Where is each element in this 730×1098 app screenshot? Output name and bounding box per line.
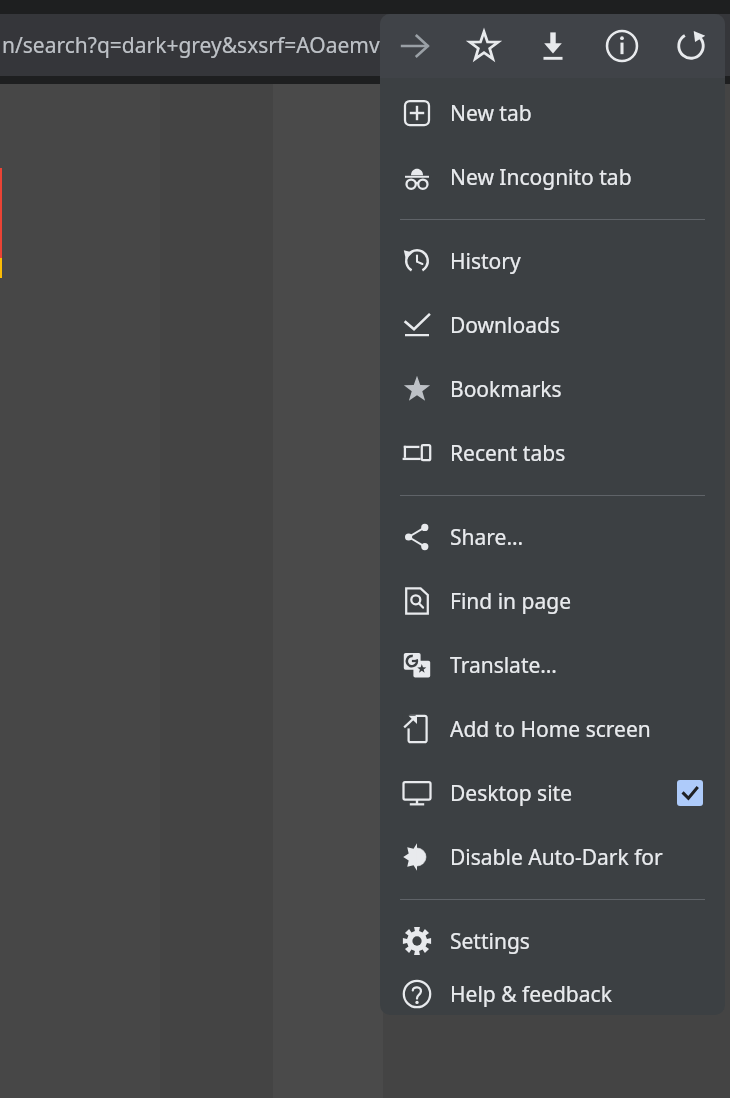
button[interactable]: Page info [587, 14, 656, 78]
button[interactable]: Forward [380, 14, 449, 78]
staticText: Translate… [450, 651, 557, 680]
staticText: Recent tabs [450, 439, 566, 468]
staticText: Find in page [450, 587, 571, 616]
button[interactable]: Settings [380, 909, 725, 973]
button[interactable]: Add to Home screen [380, 697, 725, 761]
staticText: New tab [450, 99, 532, 128]
staticText: Desktop site [450, 779, 573, 808]
staticText: Bookmarks [450, 375, 562, 404]
staticText: New Incognito tab [450, 163, 632, 192]
button[interactable]: Reload [656, 14, 725, 78]
staticText: Disable Auto-Dark for site [450, 843, 703, 872]
button[interactable]: Download page [518, 14, 587, 78]
button[interactable]: Desktop site checkbox [677, 780, 703, 806]
staticText: Help & feedback [450, 980, 612, 1009]
staticText: History [450, 247, 521, 276]
button[interactable]: Bookmark [449, 14, 518, 78]
button[interactable]: New Incognito tab [380, 145, 725, 209]
button[interactable]: Bookmarks [380, 357, 725, 421]
button[interactable]: New tab [380, 81, 725, 145]
staticText: Downloads [450, 311, 560, 340]
staticText: n/search?q=dark+grey&sxsrf=AOaemvIG' [2, 31, 407, 60]
button[interactable]: Downloads [380, 293, 725, 357]
button[interactable]: Find in page [380, 569, 725, 633]
staticText: Share… [450, 523, 523, 552]
button[interactable]: Translate… [380, 633, 725, 697]
button[interactable]: History [380, 229, 725, 293]
staticText: Add to Home screen [450, 715, 651, 744]
staticText: Settings [450, 927, 530, 956]
button[interactable]: Disable Auto-Dark for site [380, 825, 725, 889]
button[interactable]: Share… [380, 505, 725, 569]
button[interactable]: Recent tabs [380, 421, 725, 485]
button[interactable]: Help & feedback [380, 973, 725, 1015]
button[interactable]: Desktop site [380, 761, 725, 825]
